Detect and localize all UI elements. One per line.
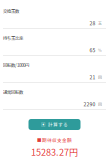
staticText: 持ち玉比率 [3, 35, 23, 41]
staticText: 玉 [98, 20, 102, 26]
staticText: % [98, 47, 102, 53]
staticText: ▣ [41, 121, 46, 128]
staticText: 21 [89, 73, 95, 81]
staticText: 28 [89, 19, 95, 27]
staticText: 回 [98, 74, 102, 80]
staticText: 計算する [48, 121, 68, 128]
staticText: 交換玉数 [3, 8, 19, 14]
staticText: 15283.27円 [31, 145, 78, 158]
staticText: 65 [89, 46, 95, 54]
staticText: 通常回転数 [3, 89, 23, 95]
staticText: ■期待収支金額 [37, 137, 72, 144]
staticText: 2290 [83, 100, 95, 108]
staticText: 回 [98, 101, 102, 107]
button[interactable]: ▣ [28, 119, 80, 130]
staticText: 回転数/1000円 [3, 62, 29, 68]
